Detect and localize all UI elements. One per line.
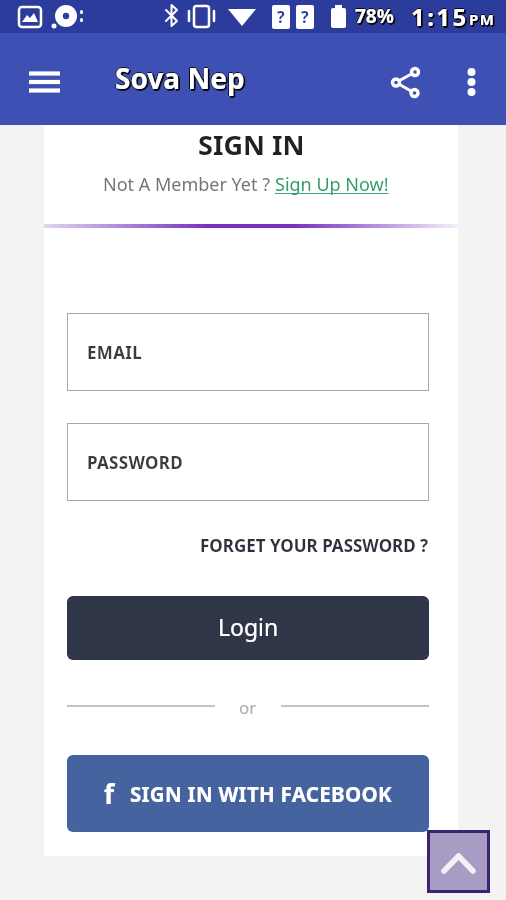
staticText: f [104,776,115,811]
button[interactable]: PASSWORD [67,423,429,501]
staticText: Sova Nep [116,61,246,99]
staticText: 78% [354,3,393,29]
button[interactable] [427,830,490,893]
staticText: ? [301,6,309,28]
staticText: Sova Nep [115,58,245,96]
button[interactable]: EMAIL [67,313,429,391]
staticText: 1:15 [413,1,471,34]
button[interactable]: Sign Up Now! [275,172,389,197]
staticText: SIGN IN [198,126,305,163]
staticText: Sova Nep [117,60,247,98]
staticText: ? [277,6,285,28]
staticText: Sova Nep [115,59,245,97]
staticText: 1:15 [411,0,469,32]
button[interactable] [16,59,72,101]
staticText: EMAIL [87,341,142,364]
staticText: Not A Member Yet ? [103,172,275,197]
staticText: PM [469,9,496,29]
staticText: SIGN IN WITH FACEBOOK [130,780,392,808]
staticText: PM [471,10,498,30]
button[interactable]: f [67,755,429,832]
button[interactable] [386,60,428,100]
button[interactable] [451,61,493,103]
button[interactable]: FORGET YOUR PASSWORD ? [200,534,429,557]
staticText: 78% [356,5,395,31]
staticText: 1:15 [411,0,469,33]
staticText: 78% [355,2,394,28]
staticText: PASSWORD [87,451,183,474]
staticText: 78% [357,4,396,30]
staticText: 1:15 [412,2,470,35]
staticText: 1:15 [410,0,468,33]
staticText: or [239,696,257,716]
staticText: PM [468,9,495,29]
staticText: 78% [355,3,394,29]
staticText: PM [470,11,497,31]
staticText: Login [218,611,279,642]
staticText: Sova Nep [114,59,244,97]
staticText: PM [469,8,496,28]
button[interactable]: Login [67,596,429,660]
